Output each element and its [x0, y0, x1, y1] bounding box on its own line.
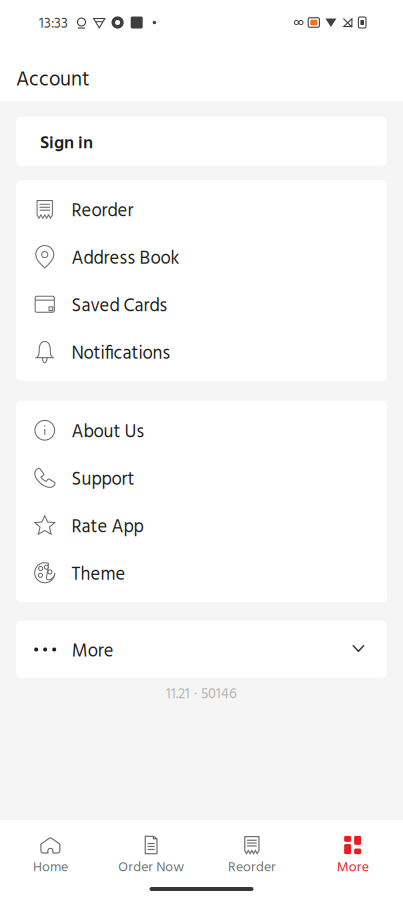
staticText: More [72, 637, 114, 666]
button[interactable]: Rate App [16, 501, 387, 549]
staticText: Support [72, 465, 135, 495]
staticText: Theme [72, 560, 126, 590]
staticText: Address Book [72, 244, 180, 274]
button[interactable]: Theme [16, 549, 387, 596]
staticText: Saved Cards [72, 292, 168, 321]
staticText: Reorder [228, 857, 276, 879]
staticText: Rate App [72, 513, 144, 542]
button[interactable]: Sign in [16, 122, 387, 160]
staticText: 13:33 [39, 12, 68, 36]
button[interactable]: Address Book [16, 233, 387, 280]
staticText: About Us [72, 418, 145, 447]
button[interactable]: Notifications [16, 328, 387, 375]
staticText: Notifications [72, 339, 171, 369]
staticText: Reorder [72, 197, 134, 226]
button[interactable]: Home [0, 835, 101, 877]
staticText: Order Now [118, 857, 184, 879]
staticText: More [337, 857, 369, 879]
button[interactable]: Support [16, 454, 387, 501]
button[interactable]: Reorder [201, 835, 302, 877]
button[interactable]: More [16, 626, 387, 673]
button[interactable]: Saved Cards [16, 280, 387, 328]
button[interactable]: More [302, 835, 403, 877]
staticText: Sign in [40, 129, 93, 158]
staticText: Account [16, 64, 90, 97]
button[interactable]: Reorder [16, 185, 387, 233]
button[interactable]: About Us [16, 406, 387, 454]
button[interactable]: Order Now [101, 835, 202, 877]
staticText: Home [33, 857, 68, 879]
staticText: 11.21 · 50146 [166, 683, 237, 706]
